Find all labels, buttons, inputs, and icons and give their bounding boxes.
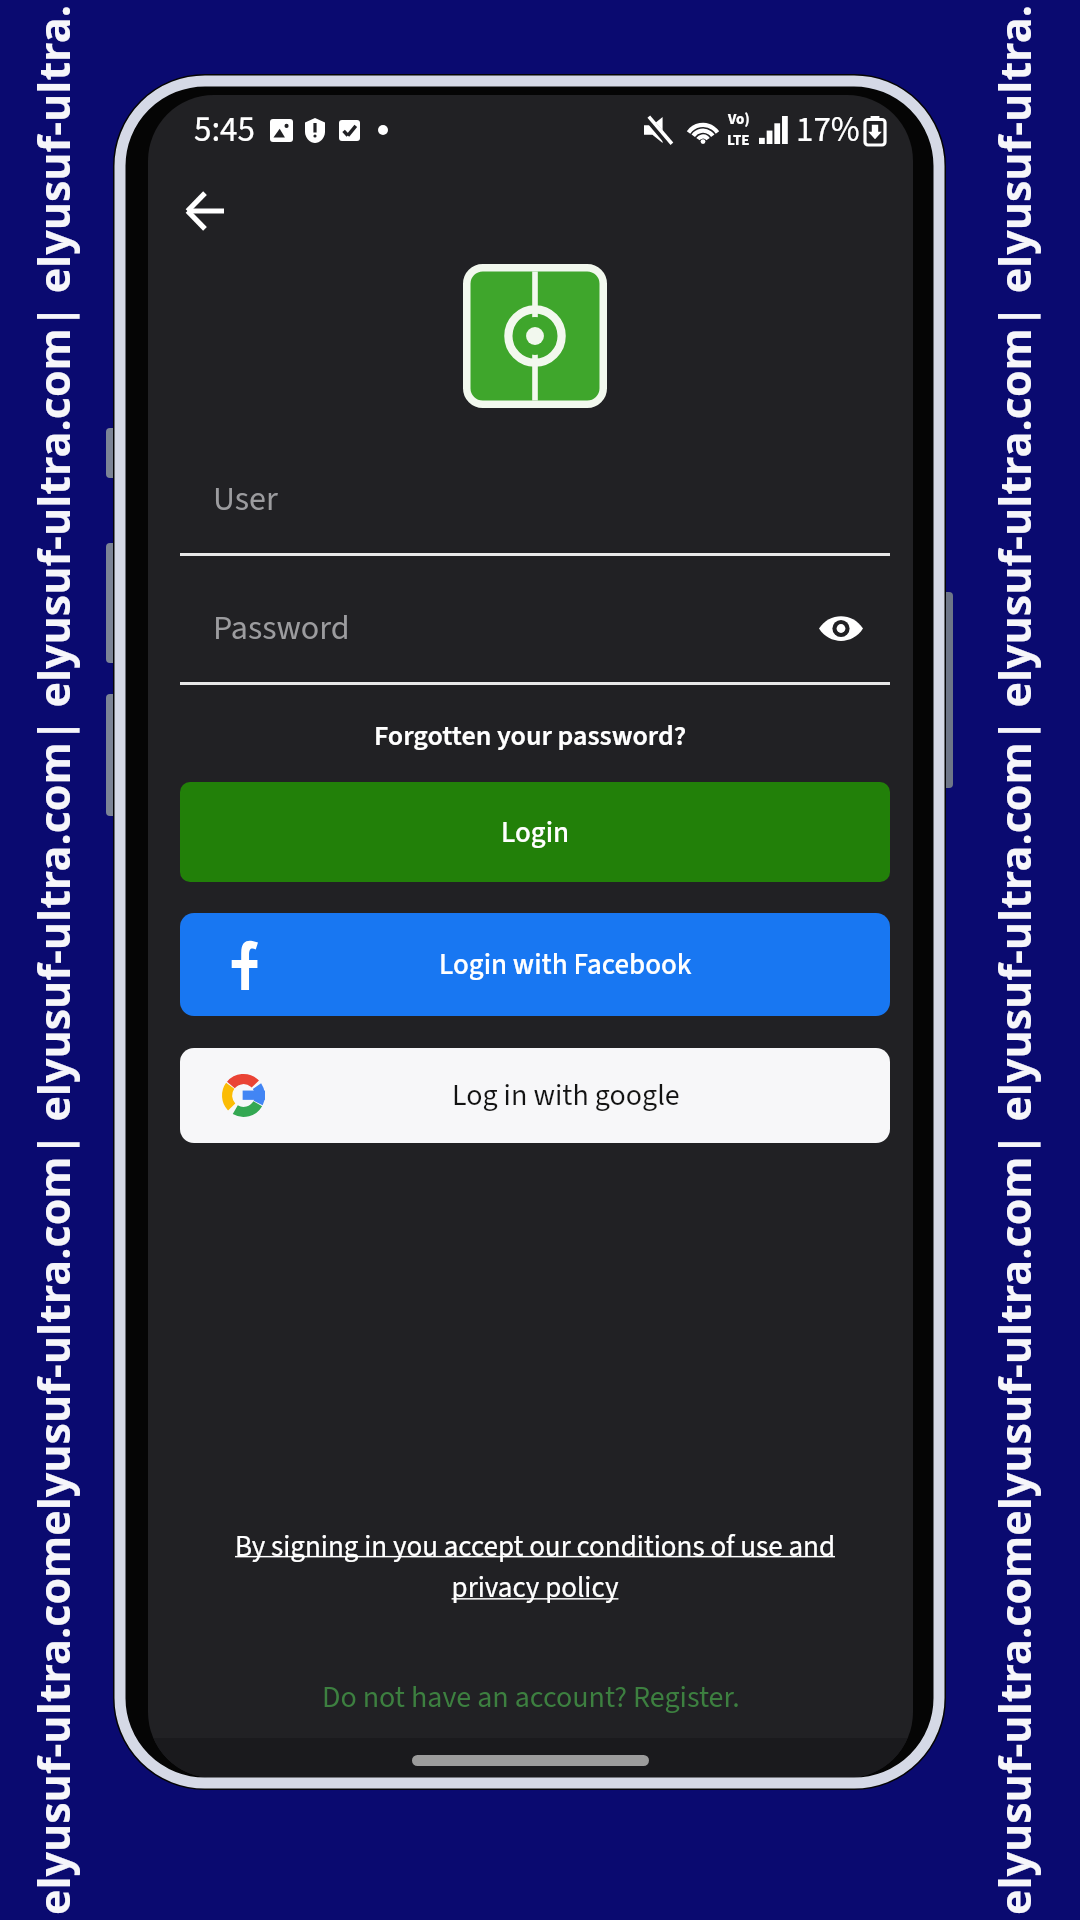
button[interactable]: Forgotten your password? xyxy=(148,706,913,766)
button[interactable]: Back xyxy=(165,171,245,251)
staticText: Password xyxy=(213,604,350,652)
staticText: 17% xyxy=(796,105,860,155)
button[interactable]: Log in with google xyxy=(180,1048,890,1143)
staticText: By signing in you accept our conditions … xyxy=(214,1526,856,1609)
button[interactable]: Do not have an account? Register. xyxy=(148,1667,913,1727)
button[interactable]: Login with Facebook xyxy=(180,913,890,1016)
staticText: LTE xyxy=(727,130,750,151)
staticText: Login xyxy=(501,812,570,853)
staticText: Do not have an account? Register. xyxy=(322,1676,740,1719)
staticText: 5:45 xyxy=(194,105,255,155)
button[interactable]: Login xyxy=(180,782,890,882)
staticText: User xyxy=(213,475,278,523)
staticText: Vo) xyxy=(728,109,750,130)
button[interactable]: By signing in you accept our conditions … xyxy=(214,1526,856,1609)
staticText: Forgotten your password? xyxy=(374,716,687,756)
staticText: Login with Facebook xyxy=(439,944,692,985)
button[interactable]: Show password xyxy=(806,593,876,663)
staticText: Log in with google xyxy=(452,1074,680,1117)
